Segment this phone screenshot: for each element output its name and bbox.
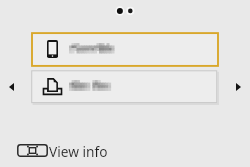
button[interactable]: Previous <box>2 76 21 98</box>
button[interactable]: View info <box>17 142 108 159</box>
button[interactable] <box>31 70 219 105</box>
button[interactable] <box>31 32 219 67</box>
staticText: View info <box>49 142 108 159</box>
button[interactable]: Next <box>229 76 248 98</box>
other: Page indicator <box>112 4 138 18</box>
